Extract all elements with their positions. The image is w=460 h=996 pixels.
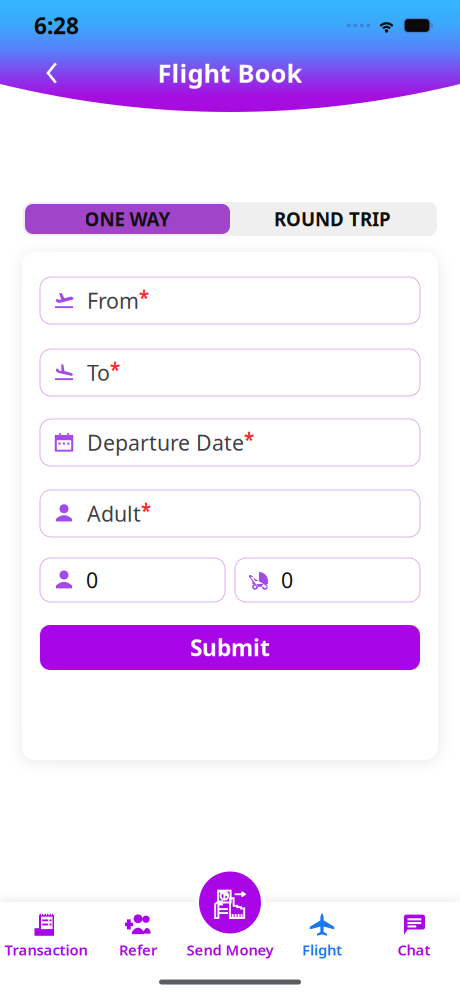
staticText: From [87,286,139,315]
button[interactable]: ROUND TRIP [230,204,435,234]
staticText: Adult [87,499,141,528]
button[interactable]: 0 [40,558,225,602]
staticText: To [87,358,110,387]
button[interactable]: Back [34,50,70,95]
button[interactable]: Chat [368,902,460,964]
button[interactable]: ONE WAY [25,204,230,234]
staticText: Submit [190,632,270,662]
staticText: 6:28 [34,10,79,40]
staticText: ONE WAY [84,207,170,231]
staticText: ROUND TRIP [274,207,391,231]
staticText: Transaction [4,940,87,959]
staticText: * [110,357,120,382]
button[interactable]: Refer [92,902,184,964]
button[interactable]: Adult [40,490,420,537]
button[interactable]: Submit [40,625,420,670]
staticText: Flight [302,940,342,959]
staticText: * [141,498,151,523]
staticText: Chat [397,940,430,959]
button[interactable]: Send Money [194,867,265,938]
button[interactable]: Send Money [184,902,276,964]
staticText: Flight Book [157,56,302,90]
button[interactable]: Flight [276,902,368,964]
button[interactable]: 0 [235,558,420,602]
button[interactable]: To [40,349,420,396]
staticText: 0 [281,566,293,594]
staticText: * [244,427,254,452]
staticText: * [139,285,149,310]
button[interactable]: Departure Date [40,419,420,466]
button[interactable]: Transaction [0,902,92,964]
staticText: 0 [86,566,98,594]
staticText: Send Money [186,940,273,959]
staticText: Departure Date [87,428,244,457]
staticText: Refer [119,940,157,959]
button[interactable]: From [40,277,420,324]
